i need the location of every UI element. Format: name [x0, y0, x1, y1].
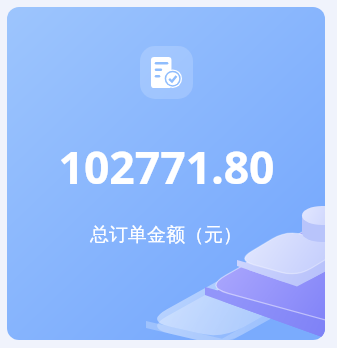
- staticText: 总订单金额（元）: [90, 223, 242, 247]
- button[interactable]: 102771.80: [7, 7, 325, 340]
- staticText: 102771.80: [58, 136, 275, 197]
